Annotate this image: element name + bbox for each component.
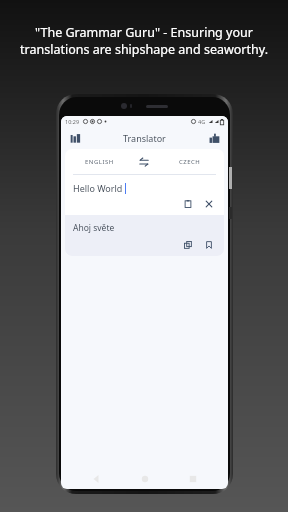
staticText: ENGLISH: [85, 158, 114, 166]
button[interactable]: Clear: [202, 197, 216, 211]
button[interactable]: Home: [137, 471, 153, 487]
staticText: CZECH: [179, 158, 201, 166]
button[interactable]: Rate: [206, 130, 222, 146]
button[interactable]: CZECH: [155, 149, 224, 174]
staticText: Hello World: [73, 182, 123, 194]
staticText: "The Grammar Guru" - Ensuring your trans…: [8, 24, 280, 57]
button[interactable]: Paste: [181, 197, 195, 211]
button[interactable]: Recents: [185, 471, 201, 487]
button[interactable]: Swap languages: [133, 151, 155, 173]
staticText: 4G: [198, 118, 206, 125]
button[interactable]: Copy: [181, 238, 195, 252]
staticText: Translator: [123, 132, 166, 144]
staticText: Ahoj světe: [73, 222, 115, 234]
staticText: 10:29: [65, 118, 80, 125]
button[interactable]: History: [67, 130, 83, 146]
button[interactable]: ENGLISH: [65, 149, 133, 174]
button[interactable]: Bookmark: [202, 238, 216, 252]
button[interactable]: Back: [88, 471, 104, 487]
